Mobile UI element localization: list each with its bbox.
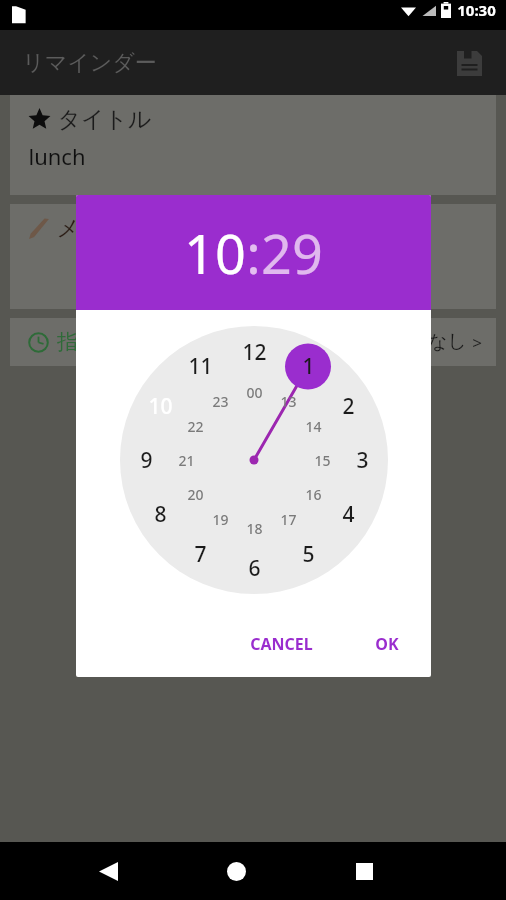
button[interactable]: CANCEL: [240, 625, 323, 663]
button[interactable]: 6: [244, 550, 265, 587]
staticText: 5: [302, 540, 315, 569]
staticText: 6: [248, 554, 261, 583]
button[interactable]: メモ: [10, 204, 496, 309]
button[interactable]: Recents: [342, 849, 386, 893]
staticText: 指定なし: [57, 329, 142, 355]
staticText: 7: [194, 540, 207, 569]
staticText: OK: [375, 633, 399, 655]
staticText: 2: [342, 392, 355, 421]
staticText: >: [472, 331, 482, 354]
staticText: 22: [187, 417, 204, 436]
staticText: lunch: [28, 141, 86, 171]
staticText: 21: [178, 451, 195, 470]
button[interactable]: 15: [311, 448, 334, 473]
button[interactable]: 1: [298, 348, 319, 385]
button[interactable]: 20: [184, 482, 207, 507]
staticText: CANCEL: [250, 633, 313, 655]
staticText: 3: [356, 446, 369, 475]
button[interactable]: Home: [214, 849, 258, 893]
staticText: 8: [154, 500, 167, 529]
staticText: 1: [302, 352, 315, 381]
button[interactable]: 3: [352, 442, 373, 479]
staticText: 00: [246, 383, 263, 402]
staticText: 11: [188, 352, 213, 381]
button[interactable]: 16: [302, 482, 325, 507]
button[interactable]: タイトル: [10, 95, 496, 195]
button[interactable]: 10: [184, 216, 246, 290]
button[interactable]: 00: [243, 380, 266, 405]
button[interactable]: 29: [261, 216, 323, 290]
button[interactable]: Save: [450, 44, 488, 82]
button[interactable]: 14: [302, 414, 325, 439]
button[interactable]: 8: [150, 496, 171, 533]
staticText: :: [246, 216, 261, 290]
staticText: 15: [314, 451, 331, 470]
staticText: 13: [280, 392, 297, 411]
button[interactable]: 9: [136, 442, 157, 479]
staticText: 14: [305, 417, 322, 436]
button[interactable]: 23: [209, 389, 232, 414]
staticText: リマインダー: [22, 49, 157, 77]
button[interactable]: 22: [184, 414, 207, 439]
staticText: 17: [280, 510, 297, 529]
button[interactable]: 18: [243, 516, 266, 541]
staticText: 10: [184, 216, 246, 290]
button[interactable]: 11: [184, 348, 217, 385]
button[interactable]: 指定なし: [10, 318, 496, 366]
button[interactable]: 19: [209, 507, 232, 532]
staticText: 10:30: [457, 0, 496, 20]
button[interactable]: 5: [298, 536, 319, 573]
staticText: 16: [305, 485, 322, 504]
button[interactable]: 10: [144, 388, 177, 425]
button[interactable]: 13: [277, 389, 300, 414]
staticText: 18: [246, 519, 263, 538]
staticText: 12: [242, 338, 267, 367]
staticText: 20: [187, 485, 204, 504]
button[interactable]: Back: [86, 849, 130, 893]
button[interactable]: 2: [338, 388, 359, 425]
staticText: 4: [342, 500, 355, 529]
button[interactable]: OK: [365, 625, 409, 663]
staticText: なし: [428, 330, 467, 354]
staticText: 23: [212, 392, 229, 411]
staticText: 9: [140, 446, 153, 475]
staticText: 19: [212, 510, 229, 529]
button[interactable]: 21: [175, 448, 198, 473]
staticText: 29: [261, 216, 323, 290]
button[interactable]: 7: [190, 536, 211, 573]
staticText: タイトル: [57, 105, 152, 134]
staticText: メモ: [56, 214, 104, 243]
button[interactable]: 12: [238, 334, 271, 371]
button[interactable]: 4: [338, 496, 359, 533]
button[interactable]: 17: [277, 507, 300, 532]
staticText: 10: [148, 392, 173, 421]
